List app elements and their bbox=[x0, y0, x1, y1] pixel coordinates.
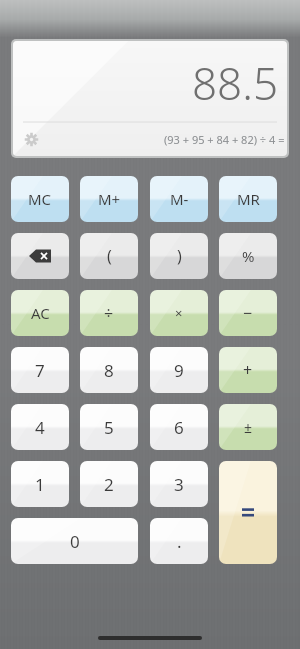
staticText: + bbox=[243, 359, 253, 381]
staticText: 8 bbox=[104, 359, 114, 382]
staticText: ) bbox=[177, 245, 182, 267]
button[interactable]: 3 bbox=[150, 461, 208, 507]
staticText: 4 bbox=[35, 416, 45, 439]
button[interactable]: 8 bbox=[80, 347, 138, 393]
staticText: 2 bbox=[104, 473, 114, 496]
staticText: 6 bbox=[174, 416, 184, 439]
button[interactable]: 4 bbox=[11, 404, 69, 450]
staticText: 9 bbox=[174, 359, 184, 382]
staticText: ± bbox=[244, 418, 253, 437]
staticText: M+ bbox=[98, 189, 121, 209]
button[interactable]: ± bbox=[219, 404, 277, 450]
staticText: ÷ bbox=[104, 302, 114, 324]
staticText: 88.5 bbox=[192, 53, 279, 109]
button[interactable]: MC bbox=[11, 176, 69, 222]
button[interactable]: M- bbox=[150, 176, 208, 222]
staticText: 3 bbox=[174, 473, 184, 496]
staticText: 1 bbox=[35, 473, 45, 496]
button[interactable]: 1 bbox=[11, 461, 69, 507]
button[interactable]: % bbox=[219, 233, 277, 279]
button[interactable]: ( bbox=[80, 233, 138, 279]
staticText: MC bbox=[28, 189, 52, 209]
button[interactable]: ÷ bbox=[80, 290, 138, 336]
staticText: . bbox=[177, 530, 182, 553]
staticText: M- bbox=[170, 189, 189, 209]
button[interactable]: MR bbox=[219, 176, 277, 222]
staticText: % bbox=[242, 246, 255, 266]
button[interactable]: 9 bbox=[150, 347, 208, 393]
staticText: 7 bbox=[35, 359, 45, 382]
button[interactable]: Backspace bbox=[11, 233, 69, 279]
staticText: MR bbox=[237, 189, 260, 209]
button[interactable]: 5 bbox=[80, 404, 138, 450]
button[interactable]: 7 bbox=[11, 347, 69, 393]
staticText: 5 bbox=[104, 416, 114, 439]
button[interactable]: − bbox=[219, 290, 277, 336]
button[interactable]: 2 bbox=[80, 461, 138, 507]
staticText: AC bbox=[31, 303, 50, 323]
button[interactable]: AC bbox=[11, 290, 69, 336]
button[interactable]: . bbox=[150, 518, 208, 564]
button[interactable]: M+ bbox=[80, 176, 138, 222]
staticText: 0 bbox=[70, 530, 80, 553]
button[interactable]: × bbox=[150, 290, 208, 336]
staticText: × bbox=[175, 304, 183, 322]
button[interactable]: 0 bbox=[11, 518, 138, 564]
staticText: − bbox=[243, 302, 253, 324]
button[interactable]: Equals bbox=[219, 461, 277, 564]
button[interactable]: ) bbox=[150, 233, 208, 279]
button[interactable]: + bbox=[219, 347, 277, 393]
button[interactable]: Settings bbox=[18, 126, 44, 152]
button[interactable]: 6 bbox=[150, 404, 208, 450]
staticText: (93 + 95 + 84 + 82) ÷ 4 = bbox=[164, 132, 285, 147]
staticText: ( bbox=[107, 245, 112, 267]
